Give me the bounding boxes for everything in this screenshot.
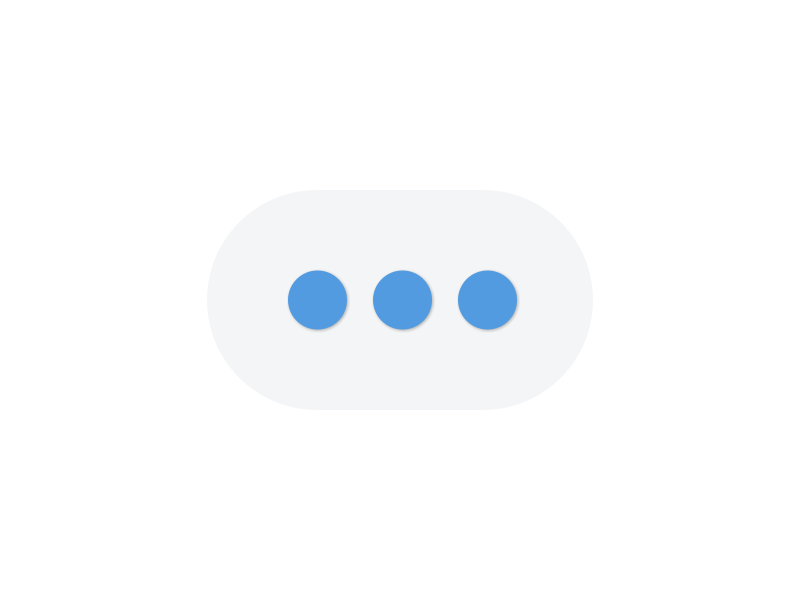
button[interactable]: More options [207,190,593,410]
